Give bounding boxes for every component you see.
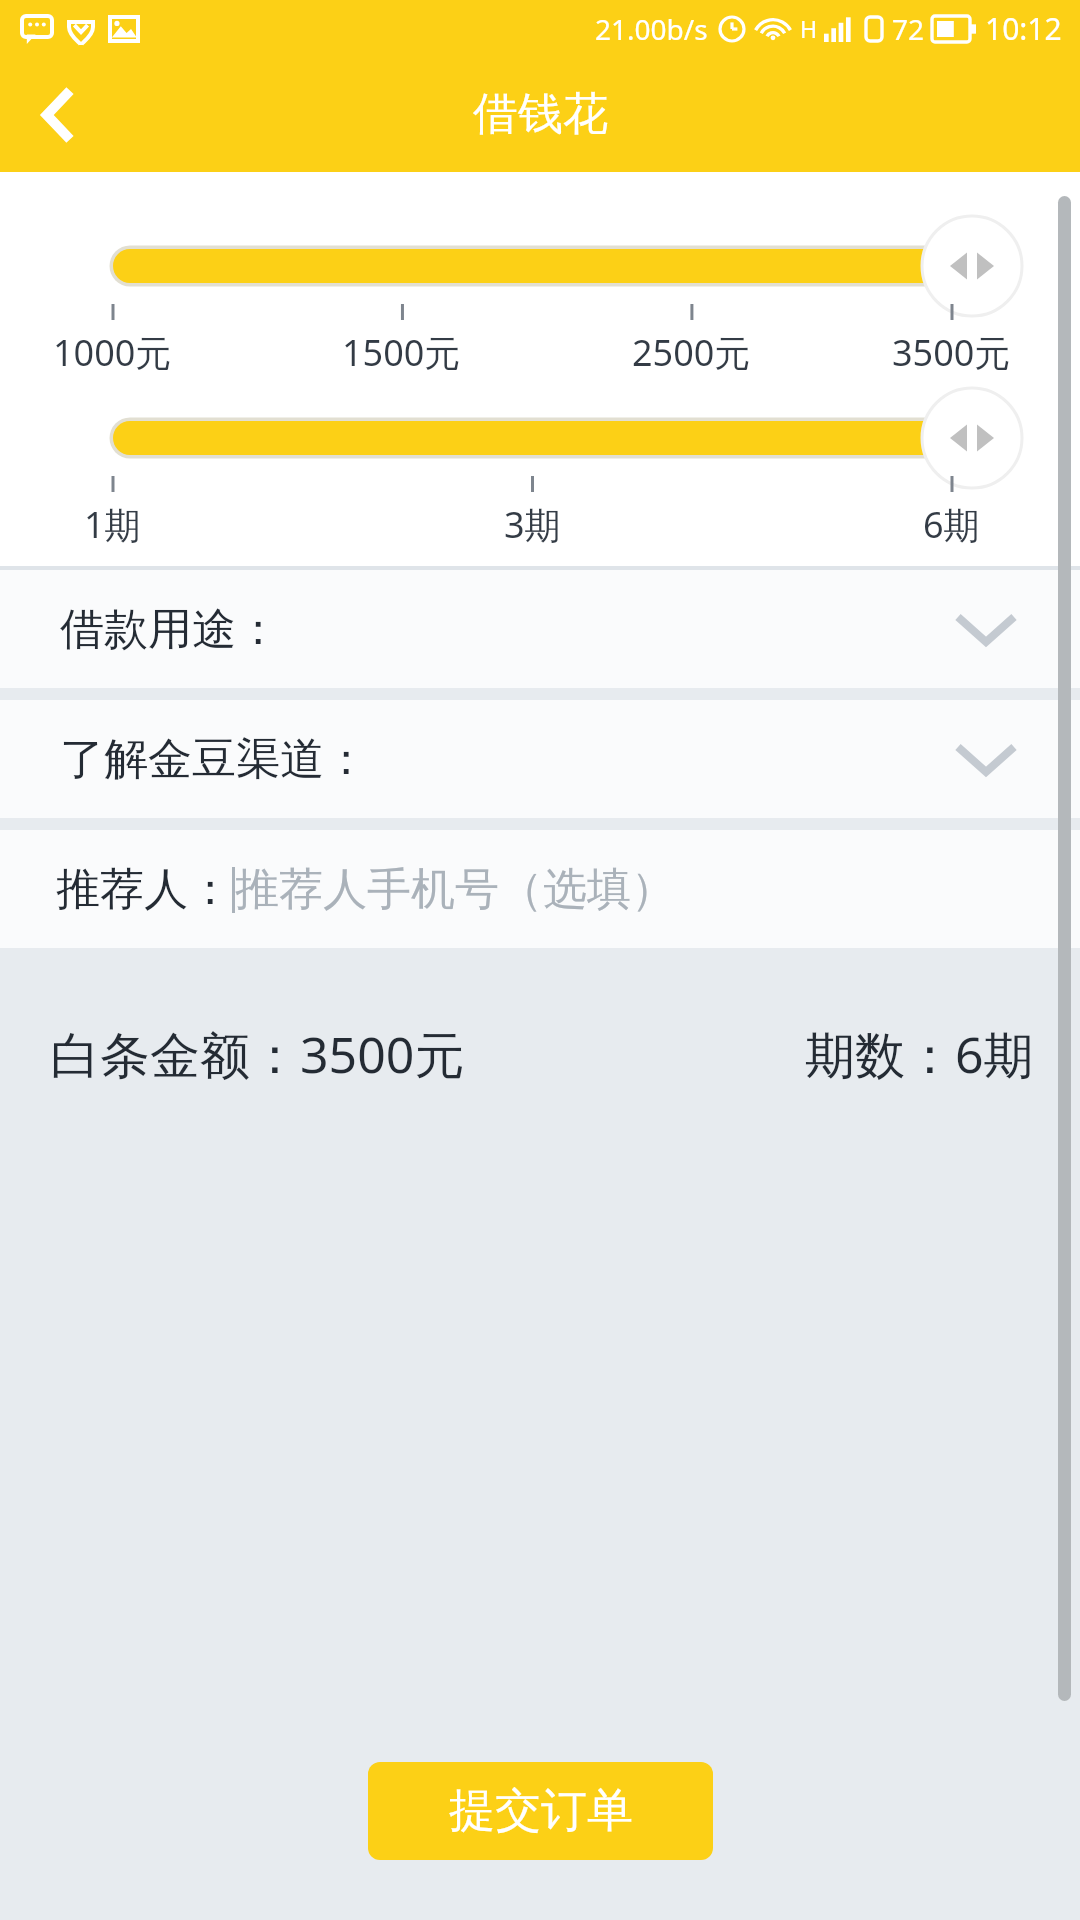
staticText: 2500元 xyxy=(632,328,751,377)
staticText: 3500元 xyxy=(892,328,1011,377)
staticText: 白条金额：3500元 xyxy=(50,1020,465,1088)
staticText: 提交订单 xyxy=(449,1782,633,1840)
staticText: 1期 xyxy=(84,500,141,549)
staticText: 3期 xyxy=(504,500,561,549)
button[interactable]: 提交订单 xyxy=(368,1762,713,1860)
button[interactable]: 推荐人： xyxy=(0,830,1080,948)
button[interactable]: 了解金豆渠道： xyxy=(0,700,1080,818)
staticText: H xyxy=(800,13,818,44)
staticText: 1500元 xyxy=(342,328,461,377)
staticText: 了解金豆渠道： xyxy=(60,732,368,787)
staticText: 1000元 xyxy=(53,328,172,377)
button[interactable]: Back xyxy=(10,67,106,163)
button[interactable]: 借款用途： xyxy=(0,570,1080,688)
staticText: 6期 xyxy=(923,500,980,549)
staticText: 10:12 xyxy=(985,8,1062,49)
staticText: 期数：6期 xyxy=(805,1020,1034,1088)
staticText: 推荐人手机号（选填） xyxy=(235,862,675,917)
staticText: 72 xyxy=(892,10,925,48)
staticText: 借款用途： xyxy=(60,602,280,657)
staticText: 21.00b/s xyxy=(595,10,708,48)
staticText: 推荐人： xyxy=(56,862,232,917)
staticText: 借钱花 xyxy=(473,86,608,143)
